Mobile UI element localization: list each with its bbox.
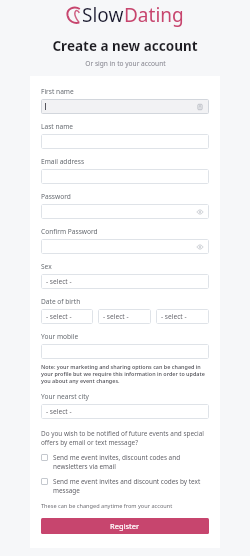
- staticText: - select -: [46, 407, 72, 416]
- staticText: Password: [41, 192, 71, 201]
- staticText: - select -: [161, 312, 187, 321]
- button[interactable]: Send me event invites, discount codes an…: [41, 452, 209, 472]
- button[interactable]: [41, 99, 209, 114]
- button[interactable]: [41, 169, 209, 184]
- staticText: Your nearst city: [41, 392, 89, 401]
- button[interactable]: - select -: [41, 274, 209, 289]
- staticText: First name: [41, 87, 74, 96]
- staticText: Note: your marketing and sharing options…: [41, 363, 209, 384]
- staticText: Your mobile: [41, 332, 79, 341]
- staticText: Confirm Password: [41, 227, 98, 236]
- button[interactable]: - select -: [41, 309, 93, 324]
- button[interactable]: Register: [41, 518, 209, 534]
- staticText: - select -: [46, 277, 72, 286]
- staticText: - select -: [46, 312, 72, 321]
- staticText: Create a new account: [52, 37, 198, 55]
- button[interactable]: Or sign in to your account: [0, 59, 250, 68]
- staticText: Slow: [82, 2, 124, 28]
- staticText: Last name: [41, 122, 74, 131]
- staticText: - select -: [103, 312, 129, 321]
- button[interactable]: - select -: [156, 309, 209, 324]
- staticText: Send me event invites and discount codes…: [53, 477, 209, 495]
- button[interactable]: - select -: [41, 404, 209, 419]
- button[interactable]: [41, 239, 209, 254]
- button[interactable]: [41, 344, 209, 359]
- button[interactable]: - select -: [98, 309, 151, 324]
- staticText: Or sign in to your account: [85, 59, 166, 68]
- staticText: Dating: [124, 2, 184, 28]
- staticText: Email address: [41, 157, 85, 166]
- button[interactable]: [41, 134, 209, 149]
- staticText: Sex: [41, 262, 52, 271]
- staticText: Do you wish to be notified of future eve…: [41, 429, 209, 447]
- staticText: Send me event invites, discount codes an…: [53, 453, 209, 471]
- staticText: Date of birth: [41, 297, 81, 306]
- staticText: These can be changed anytime from your a…: [41, 502, 173, 510]
- staticText: Register: [110, 521, 140, 531]
- button[interactable]: Send me event invites and discount codes…: [41, 476, 209, 496]
- button[interactable]: [41, 204, 209, 219]
